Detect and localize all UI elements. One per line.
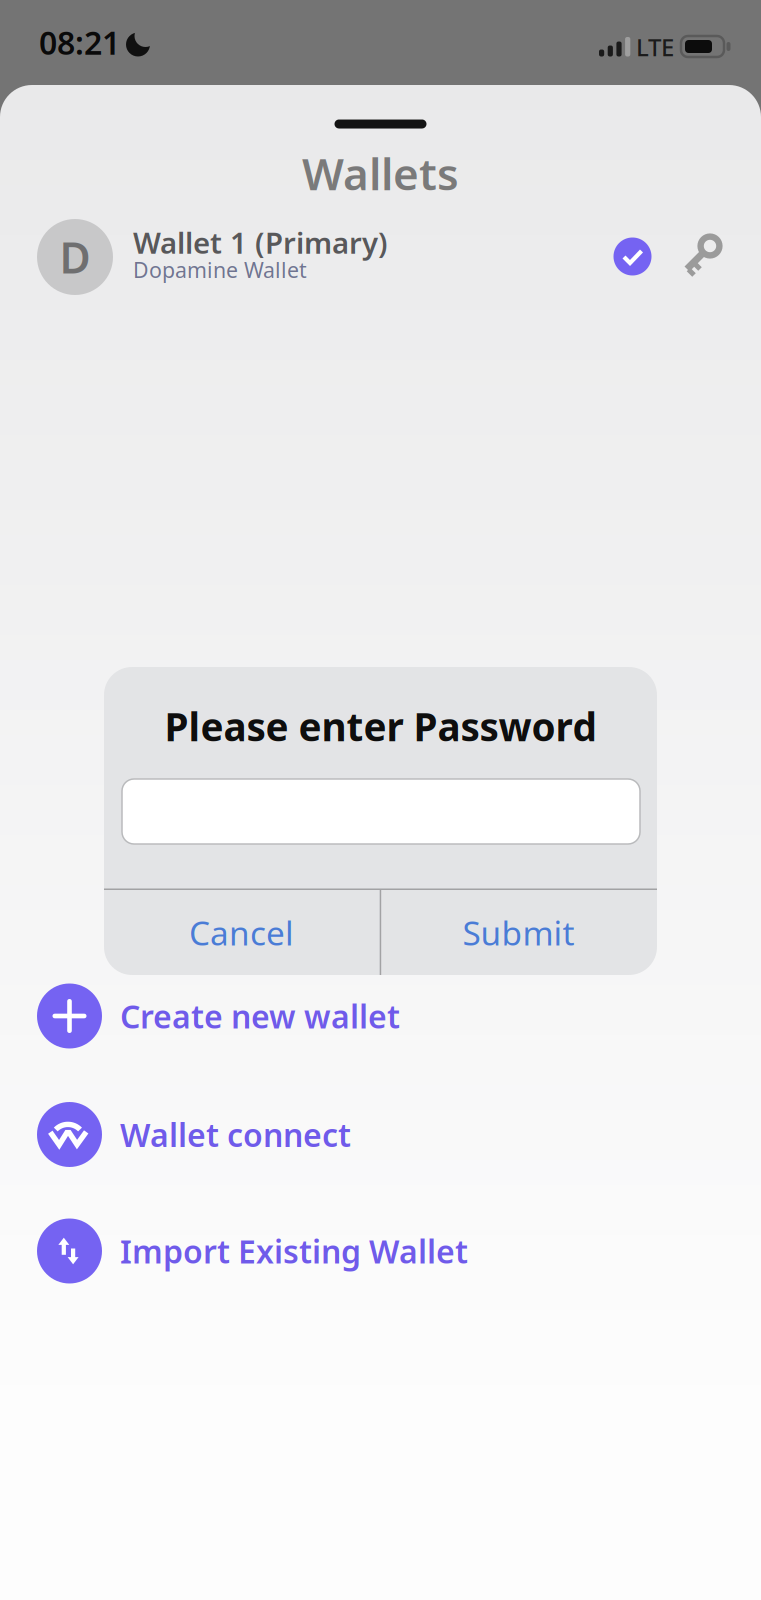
- button[interactable]: Wallet connect: [37, 1102, 351, 1167]
- button[interactable]: Create new wallet: [37, 983, 400, 1048]
- button[interactable]: Cancel: [104, 890, 379, 975]
- staticText: Wallet connect: [120, 1113, 351, 1156]
- staticText: Submit: [462, 910, 574, 955]
- staticText: 08:21: [39, 21, 120, 63]
- button[interactable]: D: [37, 219, 677, 295]
- staticText: Please enter Password: [164, 700, 596, 752]
- staticText: Import Existing Wallet: [120, 1230, 468, 1272]
- button[interactable]: Submit: [381, 890, 656, 975]
- staticText: Wallets: [302, 144, 459, 202]
- staticText: D: [59, 229, 90, 285]
- button[interactable]: Password: [122, 779, 640, 844]
- button[interactable]: Import Existing Wallet: [37, 1218, 468, 1283]
- staticText: Cancel: [189, 910, 294, 955]
- staticText: Wallet 1 (Primary): [133, 223, 388, 262]
- button[interactable]: Show private key: [674, 218, 738, 288]
- staticText: Dopamine Wallet: [133, 255, 307, 284]
- staticText: Create new wallet: [120, 995, 400, 1037]
- staticText: LTE: [636, 31, 674, 63]
